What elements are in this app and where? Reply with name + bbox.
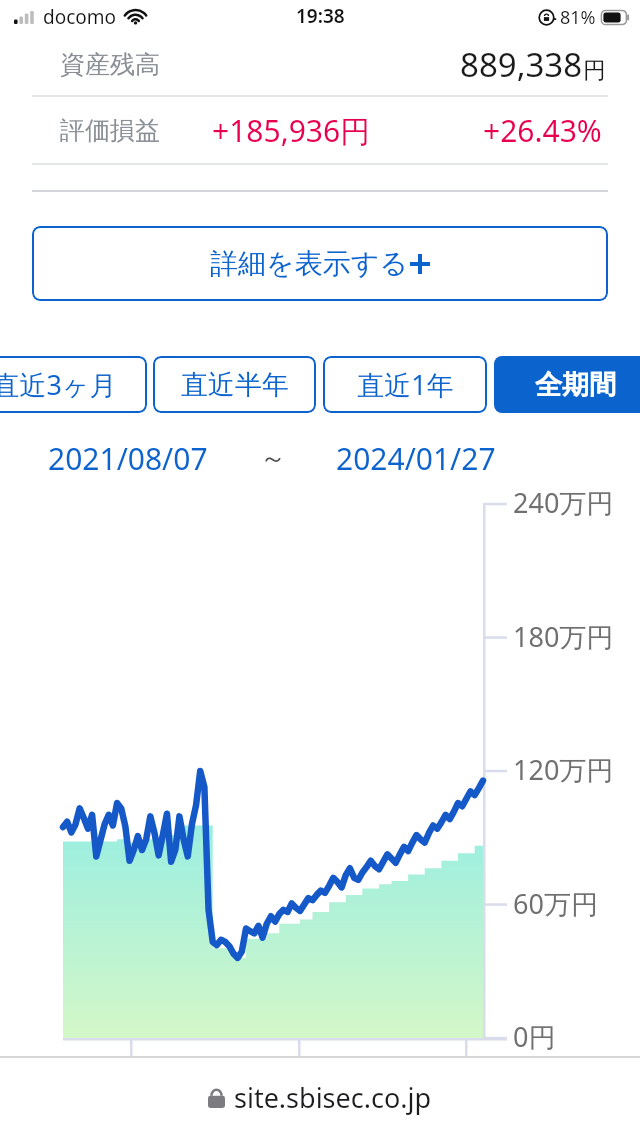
button[interactable]: 全期間 [494,356,640,413]
staticText: 0円 [513,1018,556,1055]
staticText: 詳細を表示する [210,246,408,281]
staticText: 19:38 [296,3,345,29]
staticText: 直近1年 [357,366,454,403]
staticText: 資産残高 [60,49,160,80]
staticText: 240万円 [513,484,614,521]
staticText: 889,338 [460,42,583,87]
staticText: ～ [260,442,286,475]
staticText: 全期間 [535,368,616,402]
staticText: docomo [43,4,117,30]
staticText: 2024/01/27 [336,438,496,479]
staticText: 180万円 [513,618,614,655]
staticText: 81% [560,5,596,30]
staticText: 2021/08/07 [48,438,208,479]
staticText: 60万円 [513,885,598,922]
button[interactable]: 直近半年 [153,356,316,413]
staticText: site.sbisec.co.jp [234,1079,432,1116]
staticText: 直近3ヶ月 [0,366,117,403]
staticText: 評価損益 [60,115,160,146]
staticText: 直近半年 [181,368,289,402]
button[interactable]: 直近1年 [323,356,487,413]
button[interactable]: Address bar site.sbisec.co.jp [0,1058,640,1136]
button[interactable]: 直近3ヶ月 [0,356,147,413]
staticText: 120万円 [513,751,614,788]
staticText: +185,936円 [212,110,371,151]
staticText: +26.43% [483,110,602,151]
staticText: 円 [583,56,606,85]
button[interactable]: 詳細を表示する [32,226,608,301]
